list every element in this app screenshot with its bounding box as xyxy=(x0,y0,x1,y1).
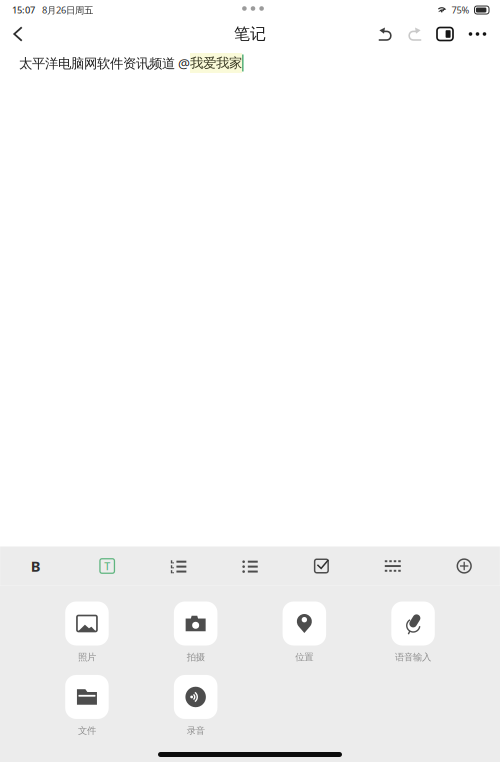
button[interactable]: 有序列表 xyxy=(143,546,214,585)
button[interactable]: 加粗 xyxy=(0,546,71,585)
button[interactable]: 待办事项 xyxy=(286,546,357,585)
button[interactable]: 更多 xyxy=(460,20,495,48)
staticText: 拍摄 xyxy=(187,651,205,663)
button[interactable]: 照片 xyxy=(33,601,141,663)
staticText: 语音输入 xyxy=(395,651,431,663)
staticText: 录音 xyxy=(187,725,205,736)
button[interactable]: 无序列表 xyxy=(214,546,286,585)
staticText: 照片 xyxy=(78,651,96,663)
staticText: 太平洋电脑网软件资讯频道 @ xyxy=(19,54,190,72)
staticText: 位置 xyxy=(295,651,313,663)
button[interactable]: 语音输入 xyxy=(359,601,467,663)
staticText: T xyxy=(104,559,110,573)
button[interactable]: 视图 xyxy=(430,20,460,48)
button[interactable]: 录音 xyxy=(141,675,250,736)
staticText: 8月26日周五 xyxy=(42,4,93,16)
staticText: 15:07 xyxy=(12,4,35,16)
button[interactable]: 文件 xyxy=(33,675,141,736)
button[interactable]: 重做 xyxy=(400,20,430,48)
button[interactable]: 返回 xyxy=(0,20,36,48)
staticText: B xyxy=(31,556,41,576)
staticText: 笔记 xyxy=(234,24,266,44)
staticText: 75% xyxy=(451,4,469,16)
staticText: 我爱我家 xyxy=(190,55,242,71)
button[interactable]: 插入 xyxy=(428,546,500,585)
button[interactable]: 撤销 xyxy=(370,20,400,48)
staticText: 文件 xyxy=(78,725,96,736)
button[interactable]: 分割线 xyxy=(357,546,428,585)
button[interactable]: 文字样式 xyxy=(71,546,143,585)
button[interactable]: 位置 xyxy=(250,601,359,663)
button[interactable]: 拍摄 xyxy=(141,601,250,663)
